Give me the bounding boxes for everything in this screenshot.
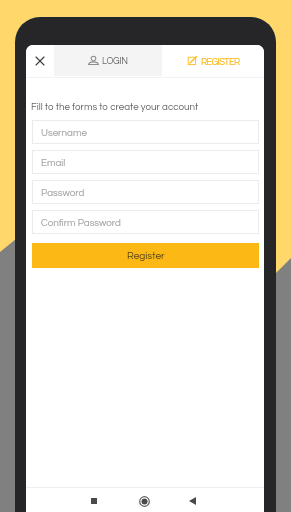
staticText: LOGIN: [102, 56, 128, 65]
staticText: Email: [41, 158, 66, 168]
staticText: REGISTER: [201, 57, 240, 66]
staticText: Confirm Password: [41, 218, 121, 228]
button[interactable]: Register: [32, 243, 259, 268]
button[interactable]: Email: [32, 150, 259, 174]
button[interactable]: Recents: [78, 485, 110, 512]
staticText: Register: [127, 251, 165, 261]
staticText: Password: [41, 188, 85, 198]
button[interactable]: Password: [32, 180, 259, 204]
button[interactable]: Home: [128, 485, 160, 512]
button[interactable]: REGISTER: [162, 45, 264, 76]
button[interactable]: Close: [26, 45, 54, 76]
button[interactable]: Back: [176, 485, 208, 512]
button[interactable]: LOGIN: [54, 45, 162, 76]
staticText: Fill to the forms to create your account: [31, 102, 199, 112]
button[interactable]: Confirm Password: [32, 210, 259, 234]
button[interactable]: Username: [32, 120, 259, 144]
staticText: Username: [41, 128, 87, 138]
